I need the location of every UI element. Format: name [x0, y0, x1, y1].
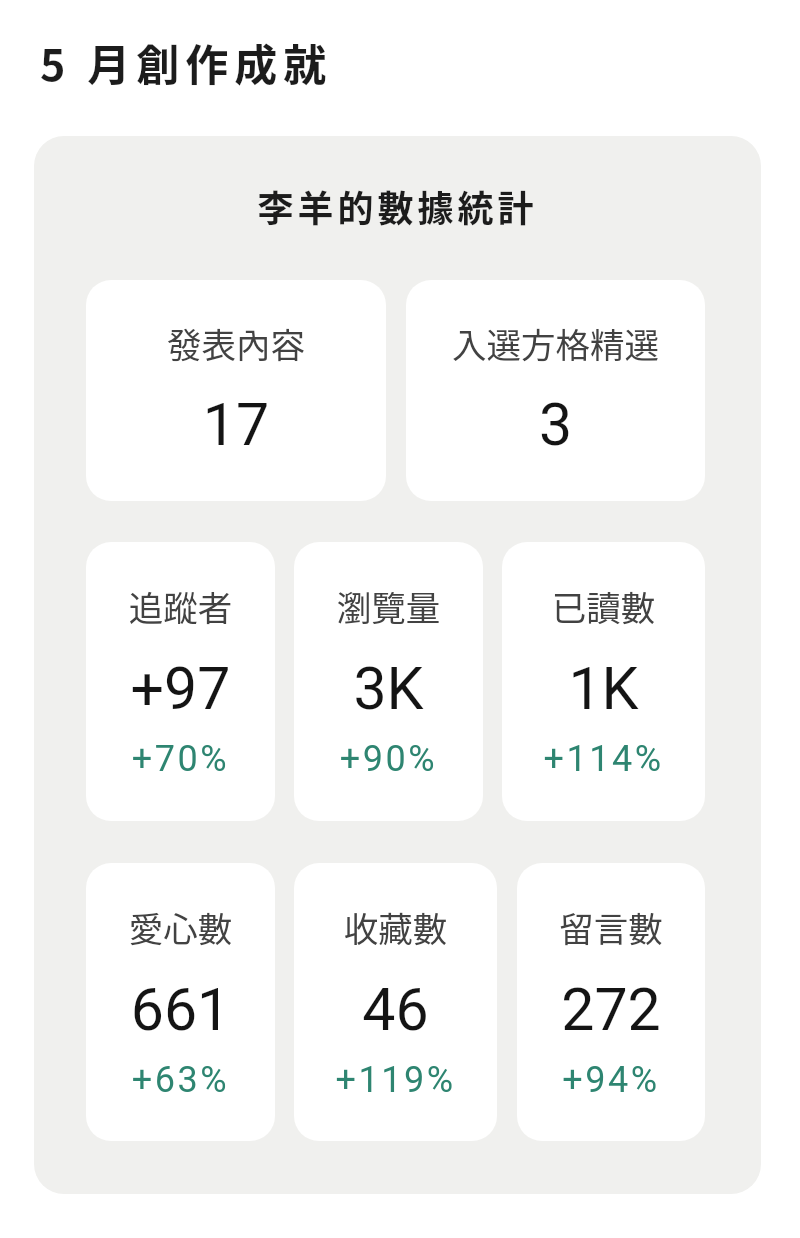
- staticText: 李羊的數據統計: [34, 180, 761, 232]
- staticText: 收藏數: [294, 902, 497, 952]
- button[interactable]: 收藏數: [294, 863, 497, 1141]
- staticText: 5 月創作成就: [40, 31, 333, 93]
- staticText: +70%: [86, 738, 275, 780]
- staticText: 17: [86, 390, 386, 459]
- button[interactable]: 留言數: [517, 863, 705, 1141]
- staticText: 1K: [502, 654, 705, 723]
- button[interactable]: 追蹤者: [86, 542, 275, 821]
- staticText: 3: [406, 390, 705, 459]
- staticText: 46: [294, 975, 497, 1044]
- staticText: +94%: [517, 1059, 705, 1101]
- button[interactable]: 已讀數: [502, 542, 705, 821]
- staticText: 272: [517, 975, 705, 1044]
- staticText: 留言數: [517, 902, 705, 952]
- staticText: 愛心數: [86, 902, 275, 952]
- staticText: 已讀數: [502, 581, 705, 631]
- staticText: +97: [86, 654, 275, 723]
- staticText: 661: [86, 975, 275, 1044]
- staticText: +114%: [502, 738, 705, 780]
- staticText: +90%: [294, 738, 483, 780]
- button[interactable]: 瀏覽量: [294, 542, 483, 821]
- button[interactable]: 發表內容: [86, 280, 386, 501]
- staticText: 發表內容: [86, 318, 386, 368]
- staticText: 3K: [294, 654, 483, 723]
- staticText: +63%: [86, 1059, 275, 1101]
- button[interactable]: 入選方格精選: [406, 280, 705, 501]
- staticText: 追蹤者: [86, 581, 275, 631]
- staticText: 瀏覽量: [294, 581, 483, 631]
- button[interactable]: 愛心數: [86, 863, 275, 1141]
- staticText: +119%: [294, 1059, 497, 1101]
- staticText: 入選方格精選: [406, 318, 705, 368]
